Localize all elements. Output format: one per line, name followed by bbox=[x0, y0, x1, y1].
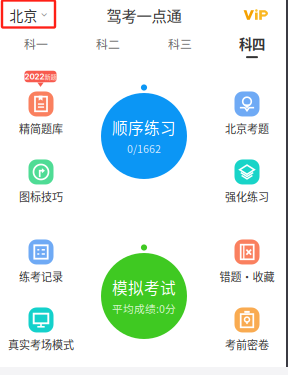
staticText: 驾考一点通 bbox=[106, 4, 181, 26]
staticText: 北京考题 bbox=[225, 120, 269, 136]
staticText: 模拟考试 bbox=[112, 276, 176, 299]
staticText: 平均成绩:0分 bbox=[112, 301, 176, 316]
staticText: 顺序练习 bbox=[112, 116, 176, 139]
staticText: 强化练习 bbox=[225, 188, 269, 204]
staticText: 0/1662 bbox=[127, 141, 161, 156]
button[interactable]: 科四 bbox=[216, 30, 288, 62]
button[interactable]: 真实考场模式 bbox=[0, 309, 82, 351]
button[interactable]: 模拟考试 bbox=[101, 241, 187, 327]
button[interactable]: 科一 bbox=[0, 30, 72, 62]
staticText: 精简题库 bbox=[19, 120, 63, 136]
staticText: 考前密卷 bbox=[225, 336, 269, 352]
staticText: 科二 bbox=[96, 35, 120, 52]
button[interactable]: 错题·收藏 bbox=[206, 241, 288, 283]
button[interactable]: 北京考题 bbox=[206, 93, 288, 135]
staticText: 练考记录 bbox=[19, 268, 63, 284]
button[interactable]: 考前密卷 bbox=[206, 309, 288, 351]
staticText: 错题·收藏 bbox=[219, 268, 274, 284]
button[interactable]: 图标技巧 bbox=[0, 161, 82, 203]
staticText: ⌄ bbox=[40, 7, 47, 19]
button[interactable]: 科三 bbox=[144, 30, 216, 62]
staticText: 科四 bbox=[239, 34, 265, 53]
staticText: 2022 bbox=[24, 72, 44, 81]
staticText: 北京 bbox=[9, 5, 37, 25]
staticText: 科一 bbox=[24, 35, 48, 52]
button[interactable]: 顺序练习 bbox=[101, 93, 187, 179]
staticText: 真实考场模式 bbox=[8, 336, 74, 352]
staticText: 图标技巧 bbox=[19, 188, 63, 204]
button[interactable]: 科二 bbox=[72, 30, 144, 62]
button[interactable]: 精简题库 bbox=[0, 93, 82, 135]
button[interactable]: VIP 会员 bbox=[243, 9, 270, 21]
button[interactable]: 强化练习 bbox=[206, 161, 288, 203]
staticText: 科三 bbox=[168, 35, 192, 52]
button[interactable]: 北京 bbox=[2, 1, 55, 28]
staticText: 新题 bbox=[44, 72, 56, 81]
button[interactable]: 练考记录 bbox=[0, 241, 82, 283]
